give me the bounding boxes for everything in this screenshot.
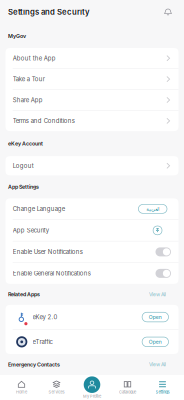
button[interactable]: Logout xyxy=(5,156,178,175)
staticText: eKey 2.0 xyxy=(32,313,57,321)
staticText: العربية xyxy=(146,206,160,212)
staticText: App Security xyxy=(13,227,49,234)
button[interactable]: Open xyxy=(142,337,168,347)
staticText: MyGov xyxy=(8,33,26,39)
staticText: Settings xyxy=(155,390,169,394)
button[interactable]: eKey 2.0 xyxy=(5,305,178,329)
staticText: Logout xyxy=(13,162,34,169)
button[interactable]: View All xyxy=(149,291,166,297)
staticText: Related Apps xyxy=(8,291,40,298)
staticText: Services xyxy=(48,390,64,394)
staticText: App Settings xyxy=(8,184,39,190)
staticText: Home xyxy=(16,390,27,394)
staticText: eTraffic xyxy=(32,338,52,345)
staticText: eKey Account xyxy=(8,140,43,147)
staticText: My Profile xyxy=(83,394,101,399)
button[interactable]: My Profile xyxy=(74,375,110,400)
staticText: About the App xyxy=(13,55,56,62)
staticText: Enable User Notifications xyxy=(13,248,83,256)
staticText: View All xyxy=(149,291,166,297)
staticText: Open xyxy=(149,339,162,345)
staticText: Take a Tour xyxy=(13,75,45,83)
staticText: Change Language xyxy=(13,205,65,213)
staticText: View All xyxy=(149,361,166,367)
button[interactable]: Take a Tour xyxy=(5,69,178,89)
button[interactable]: Catalogue xyxy=(110,375,145,400)
button[interactable]: العربية xyxy=(138,204,167,213)
staticText: Share App xyxy=(13,96,43,104)
button[interactable]: Open xyxy=(142,312,168,322)
button[interactable]: eTraffic xyxy=(5,330,178,354)
button[interactable]: Toggle xyxy=(155,247,171,256)
button[interactable]: About the App xyxy=(5,48,178,68)
staticText: Catalogue xyxy=(119,390,136,394)
staticText: Open xyxy=(149,314,162,320)
staticText: Settings and Security xyxy=(8,7,90,17)
staticText: Emergency Contacts xyxy=(8,361,60,368)
button[interactable]: Home xyxy=(4,375,39,400)
staticText: Terms and Conditions xyxy=(13,117,75,125)
button[interactable]: Toggle xyxy=(155,269,171,278)
button[interactable]: App Security xyxy=(5,220,178,241)
button[interactable]: Services xyxy=(39,375,74,400)
button[interactable]: Settings xyxy=(145,375,180,400)
button[interactable]: Change Language xyxy=(5,198,178,219)
button[interactable]: Notifications xyxy=(164,7,172,17)
button[interactable]: Terms and Conditions xyxy=(5,111,178,131)
button[interactable]: View All xyxy=(149,361,166,367)
staticText: Enable General Notifications xyxy=(13,270,91,277)
button[interactable]: Share App xyxy=(5,90,178,110)
